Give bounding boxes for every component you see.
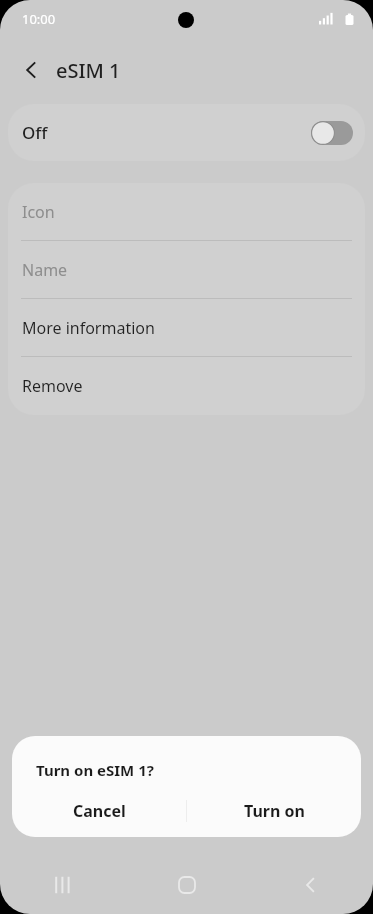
- staticText: eSIM 1: [56, 57, 121, 84]
- button[interactable]: Cancel: [12, 792, 186, 830]
- staticText: More information: [22, 317, 155, 339]
- staticText: Turn on: [244, 800, 305, 822]
- button[interactable]: Turn on: [187, 792, 361, 830]
- button[interactable]: Remove: [8, 357, 365, 415]
- staticText: Icon: [22, 201, 55, 223]
- button[interactable]: Back: [249, 855, 373, 914]
- staticText: Off: [22, 121, 48, 144]
- button[interactable]: Home: [125, 855, 249, 914]
- button[interactable]: Off: [8, 104, 365, 161]
- button[interactable]: Name: [8, 241, 365, 299]
- button[interactable]: Icon: [8, 183, 365, 241]
- staticText: Turn on eSIM 1?: [36, 760, 154, 780]
- staticText: Name: [22, 259, 68, 281]
- button[interactable]: Back: [10, 48, 54, 92]
- button[interactable]: Toggle eSIM: [311, 121, 353, 145]
- staticText: 10:00: [22, 10, 56, 28]
- staticText: Remove: [22, 375, 83, 397]
- button[interactable]: More information: [8, 299, 365, 357]
- staticText: Cancel: [73, 800, 126, 822]
- button[interactable]: Recents: [0, 855, 125, 914]
